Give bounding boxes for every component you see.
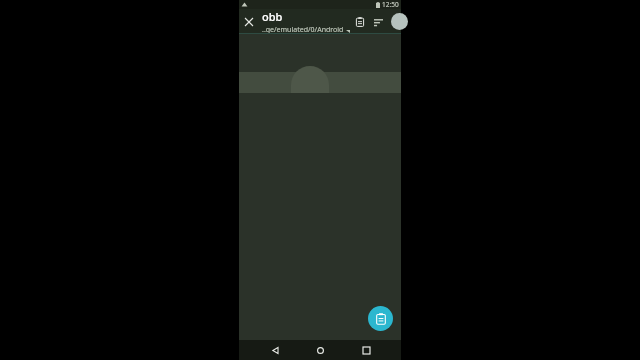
button[interactable]: Sort — [369, 13, 387, 31]
staticText: obb — [262, 9, 283, 24]
button[interactable]: Home — [310, 340, 330, 360]
button[interactable]: Clipboard — [351, 13, 369, 31]
staticText: 12:50 — [382, 0, 399, 9]
button[interactable]: Paste — [368, 306, 393, 331]
button[interactable]: Close — [239, 12, 259, 32]
button[interactable]: Recent apps — [356, 340, 376, 360]
button[interactable]: obb — [262, 9, 351, 34]
button[interactable]: More options — [387, 15, 401, 29]
staticText: ..ge/emulated/0/Android — [262, 25, 344, 34]
button[interactable]: Back — [265, 340, 285, 360]
